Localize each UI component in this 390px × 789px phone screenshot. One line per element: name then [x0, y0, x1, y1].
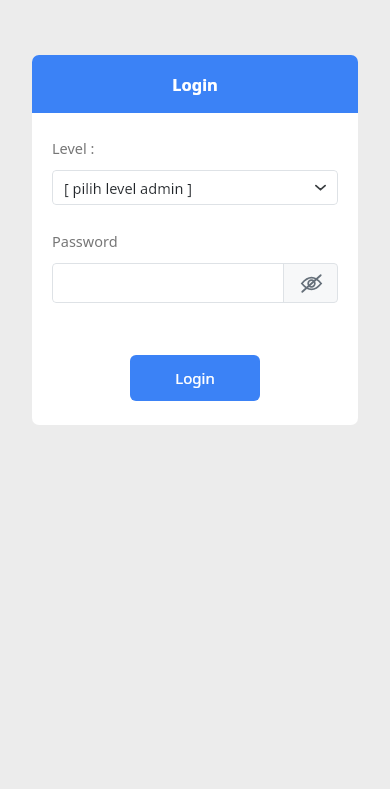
staticText: [ pilih level admin ] — [64, 178, 315, 198]
button[interactable]: Show password — [284, 263, 338, 303]
button[interactable]: [ pilih level admin ] — [52, 170, 338, 205]
staticText: Password — [52, 231, 118, 251]
staticText: Login — [175, 368, 215, 388]
button[interactable] — [52, 263, 283, 303]
staticText: Login — [172, 73, 218, 95]
button[interactable]: Login — [130, 355, 260, 401]
staticText: Level : — [52, 138, 95, 158]
